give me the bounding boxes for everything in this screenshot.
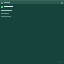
button[interactable] xyxy=(1,5,63,8)
button[interactable]: Menu xyxy=(1,2,3,4)
button[interactable] xyxy=(1,9,63,11)
button[interactable] xyxy=(1,15,63,17)
button[interactable] xyxy=(1,12,63,14)
button[interactable]: Search xyxy=(61,2,63,4)
